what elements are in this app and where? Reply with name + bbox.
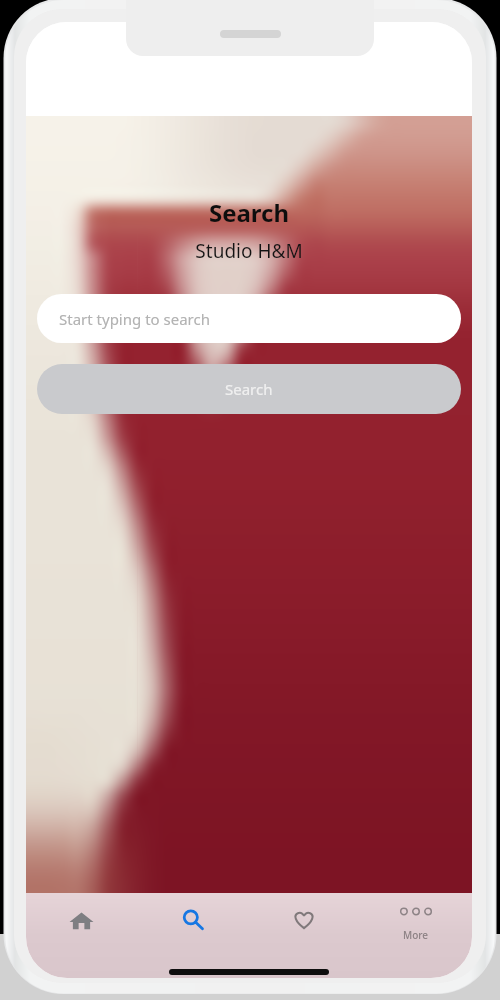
button[interactable]: More — [360, 893, 472, 947]
staticText: Studio H&M — [26, 238, 472, 264]
staticText: Search — [26, 196, 472, 229]
button[interactable]: Search — [137, 893, 248, 947]
button[interactable]: Start typing to search — [37, 294, 461, 343]
staticText: Search — [225, 379, 273, 399]
button[interactable]: Favourites — [248, 893, 360, 947]
button[interactable]: Search — [37, 364, 461, 414]
button[interactable]: Home — [26, 893, 137, 947]
staticText: More — [403, 928, 429, 942]
staticText: Start typing to search — [59, 309, 210, 329]
